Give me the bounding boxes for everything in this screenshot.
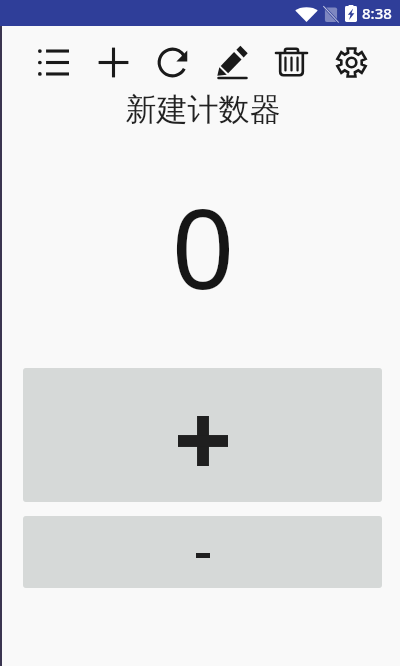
button[interactable]: Edit	[212, 26, 252, 88]
button[interactable]: Reset	[152, 26, 192, 88]
button[interactable]: Delete	[271, 26, 311, 88]
staticText: 新建计数器	[6, 90, 400, 129]
button[interactable]	[23, 368, 382, 502]
button[interactable]: List	[33, 26, 73, 88]
button[interactable]: Add	[93, 26, 133, 88]
button[interactable]	[23, 516, 382, 588]
staticText: 0	[6, 171, 400, 321]
staticText: 8:38	[362, 3, 392, 23]
button[interactable]: Settings	[331, 26, 371, 88]
